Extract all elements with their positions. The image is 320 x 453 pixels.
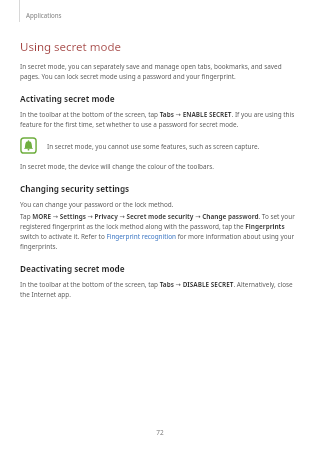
staticText: You can change your password or the lock… xyxy=(20,200,174,209)
staticText: Using secret mode xyxy=(20,39,121,55)
staticText: Tap MORE → Settings → Privacy → Secret m… xyxy=(20,212,298,251)
staticText: Changing security settings xyxy=(20,183,130,194)
staticText: Deactivating secret mode xyxy=(20,263,125,274)
staticText: In secret mode, you cannot use some feat… xyxy=(47,142,260,151)
staticText: Applications xyxy=(26,11,62,19)
staticText: 72 xyxy=(156,428,164,437)
other: Note xyxy=(20,137,37,154)
staticText: In secret mode, the device will change t… xyxy=(20,162,214,171)
staticText: In the toolbar at the bottom of the scre… xyxy=(20,280,298,299)
staticText: Activating secret mode xyxy=(20,93,115,104)
staticText: In secret mode, you can separately save … xyxy=(20,62,298,81)
staticText: In the toolbar at the bottom of the scre… xyxy=(20,110,298,129)
